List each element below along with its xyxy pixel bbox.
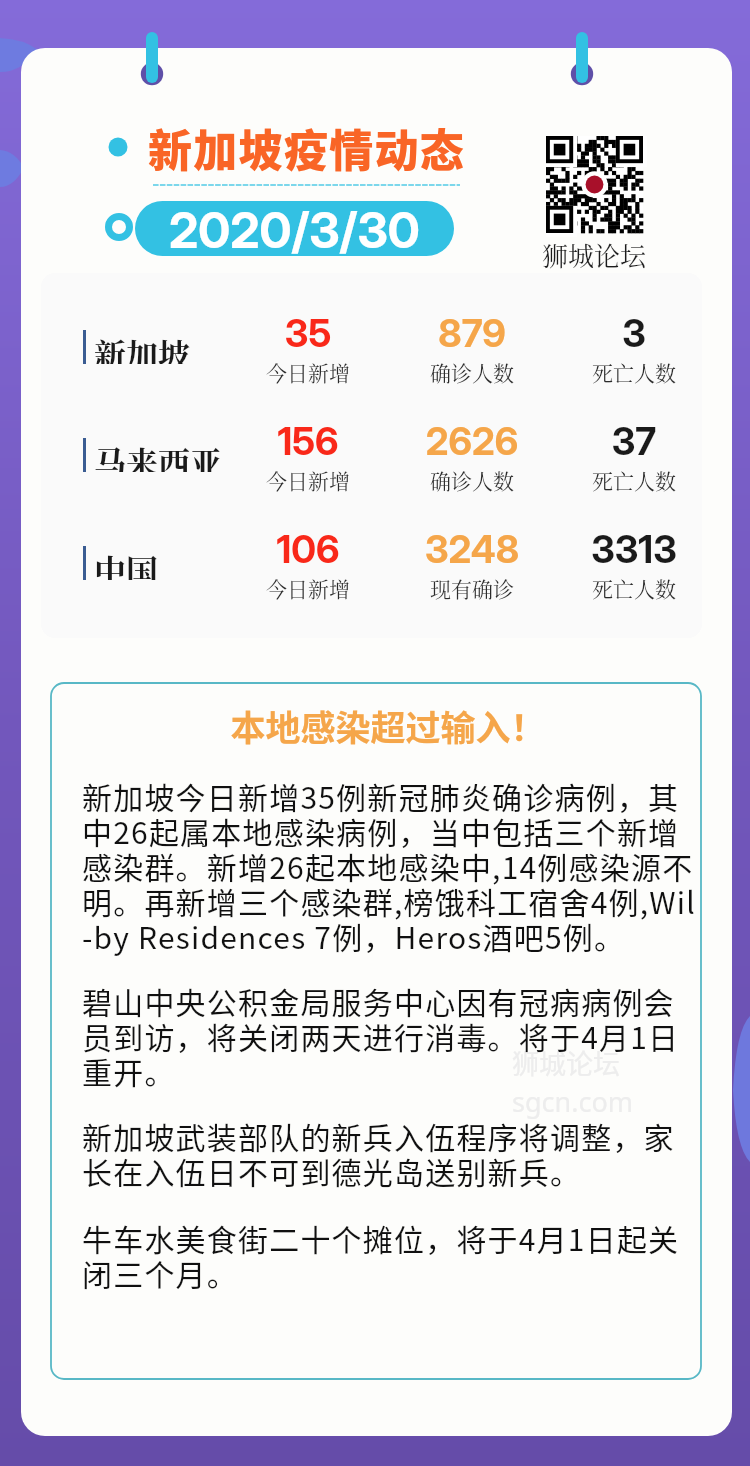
button[interactable]: QR code 狮城论坛 <box>542 136 647 273</box>
button[interactable]: 2626 <box>412 418 532 488</box>
staticText: 本地感染超过输入！ <box>82 700 694 751</box>
staticText: 新加坡今日新增35例新冠肺炎确诊病例，其 中26起属本地感染病例，当中包括三个新… <box>82 774 722 957</box>
staticText: 今日新增 <box>248 465 368 495</box>
staticText: 狮城论坛 <box>542 236 647 273</box>
button[interactable]: 3248 <box>412 526 532 596</box>
staticText: 狮城论坛 <box>512 1043 620 1082</box>
staticText: 碧山中央公积金局服务中心因有冠病病例会 员到访，将关闭两天进行消毒。将于4月1日… <box>82 979 722 1092</box>
button[interactable]: 中国 <box>83 546 159 580</box>
staticText: 新加坡 <box>94 330 191 364</box>
staticText: 今日新增 <box>248 573 368 603</box>
staticText: 156 <box>248 418 368 464</box>
button[interactable]: 新加坡 <box>83 330 191 364</box>
staticText: sgcn.com <box>512 1083 633 1120</box>
staticText: 牛车水美食街二十个摊位，将于4月1日起关 闭三个月。 <box>82 1216 722 1294</box>
staticText: 37 <box>574 418 694 464</box>
staticText: 2020/3/30 <box>169 201 420 256</box>
staticText: 今日新增 <box>248 357 368 387</box>
staticText: 死亡人数 <box>574 465 694 495</box>
staticText: 死亡人数 <box>574 357 694 387</box>
button[interactable]: 3313 <box>574 526 694 596</box>
button[interactable]: 106 <box>248 526 368 596</box>
staticText: 死亡人数 <box>574 573 694 603</box>
staticText: 新加坡武装部队的新兵入伍程序将调整，家 长在入伍日不可到德光岛送别新兵。 <box>82 1114 722 1192</box>
staticText: 106 <box>248 526 368 572</box>
staticText: 确诊人数 <box>412 357 532 387</box>
button[interactable]: 3 <box>574 310 694 380</box>
button[interactable]: 156 <box>248 418 368 488</box>
staticText: 现有确诊 <box>412 573 532 603</box>
button[interactable]: 879 <box>412 310 532 380</box>
staticText: 3 <box>574 310 694 356</box>
staticText: 35 <box>248 310 368 356</box>
staticText: 马来西亚 <box>94 438 223 472</box>
staticText: 新加坡疫情动态 <box>148 116 466 180</box>
staticText: 中国 <box>94 546 159 580</box>
staticText: 879 <box>412 310 532 356</box>
staticText: 2626 <box>412 418 532 464</box>
staticText: 3313 <box>574 526 694 572</box>
button[interactable]: 35 <box>248 310 368 380</box>
button[interactable]: 2020/3/30 <box>135 201 454 256</box>
button[interactable]: 马来西亚 <box>83 438 223 472</box>
button[interactable]: 37 <box>574 418 694 488</box>
staticText: 3248 <box>412 526 532 572</box>
staticText: 确诊人数 <box>412 465 532 495</box>
